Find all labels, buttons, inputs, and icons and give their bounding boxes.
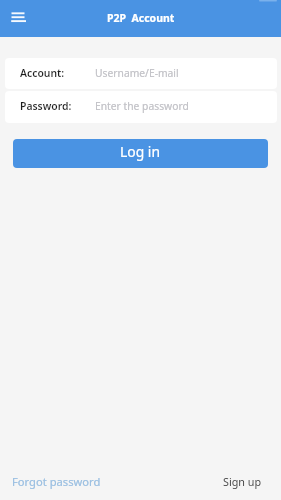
button[interactable]: Forgot password bbox=[10, 472, 103, 491]
staticText: P2P Account bbox=[107, 11, 175, 25]
staticText: Account: bbox=[20, 66, 65, 80]
staticText: Password: bbox=[20, 99, 72, 113]
staticText: Username/E-mail bbox=[95, 66, 179, 80]
staticText: Sign up bbox=[223, 474, 262, 489]
button[interactable]: Password: bbox=[5, 91, 277, 123]
staticText: Enter the password bbox=[95, 99, 189, 113]
staticText: Log in bbox=[120, 142, 161, 161]
button[interactable]: Sign up bbox=[221, 472, 264, 491]
staticText: Forgot password bbox=[12, 474, 101, 489]
button[interactable]: Menu bbox=[4, 12, 32, 26]
button[interactable]: Account: bbox=[5, 58, 277, 89]
button[interactable]: Log in bbox=[13, 139, 268, 168]
